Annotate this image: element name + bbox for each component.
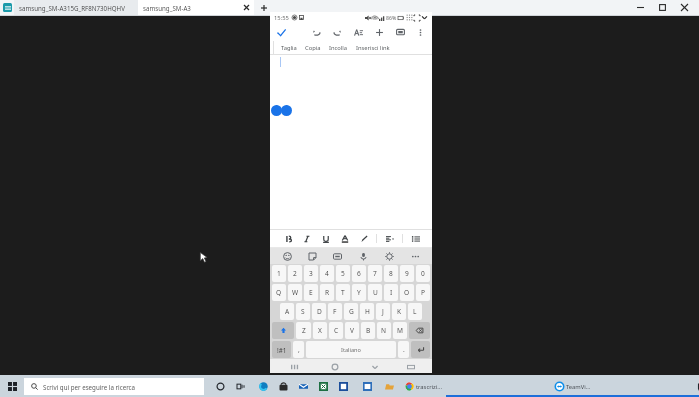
button[interactable]: File Explorer [383,380,396,393]
button[interactable]: E [304,284,318,301]
button[interactable]: B [361,322,375,339]
button[interactable]: Close tab [242,3,251,12]
button[interactable]: Enter [411,341,430,358]
button[interactable]: trascrizi... [405,375,442,397]
button[interactable]: 3 [304,265,318,282]
button[interactable]: Close [673,0,695,15]
button[interactable]: samsung_SM-A315G_RF8N730HQHV [14,0,138,15]
button[interactable]: D [312,303,326,320]
button[interactable]: . [398,341,409,358]
button[interactable]: O [400,284,414,301]
button[interactable]: More options [414,26,427,39]
button[interactable]: Stickers [305,249,319,263]
button[interactable]: Word [337,380,350,393]
button[interactable]: G [344,303,358,320]
button[interactable]: Scrivi qui per eseguire la ricerca [24,378,204,395]
button[interactable]: Comment [394,26,407,39]
button[interactable]: Backspace [409,322,430,339]
staticText: A [285,307,290,316]
button[interactable]: A [280,303,294,320]
button[interactable]: 4 [320,265,334,282]
button[interactable]: C [329,322,343,339]
button[interactable]: New tab [254,0,274,15]
button[interactable]: 6 [352,265,366,282]
button[interactable]: Y [352,284,366,301]
button[interactable]: Format [352,26,365,39]
staticText: D [317,307,322,316]
button[interactable]: Text colour [338,232,351,245]
button[interactable]: TeamVi... [446,375,699,397]
button[interactable]: Done [275,26,288,39]
button[interactable]: Italic [300,232,313,245]
button[interactable]: Redo [331,26,344,39]
button[interactable]: Alignment [383,232,396,245]
staticText: 5 [341,269,345,278]
staticText: W [292,288,299,297]
button[interactable]: Italiano [306,341,396,358]
button[interactable]: Microsoft Edge [257,380,270,393]
button[interactable]: Z [296,322,311,339]
button[interactable]: !#1 [272,341,291,358]
button[interactable]: samsung_SM-A315G_RF8N730HQHV [138,0,254,15]
button[interactable]: V [345,322,359,339]
button[interactable]: 9 [400,265,414,282]
button[interactable]: 1 [272,265,286,282]
button[interactable]: 8 [384,265,398,282]
staticText: . [403,345,405,354]
button[interactable]: Taglia [281,44,297,52]
button[interactable]: Keyboard [404,360,417,373]
button[interactable]: 5 [336,265,350,282]
button[interactable]: I [384,284,398,301]
button[interactable]: Recents [288,360,301,373]
button[interactable]: S [296,303,310,320]
staticText: P [421,288,425,297]
button[interactable]: Maximize [651,0,673,15]
button[interactable]: N [377,322,391,339]
button[interactable]: Start [0,375,24,397]
button[interactable]: Bold [282,232,295,245]
button[interactable]: Incolla [329,44,348,52]
button[interactable]: X [313,322,327,339]
button[interactable]: W [288,284,302,301]
button[interactable]: T [336,284,350,301]
button[interactable]: Shift [272,322,294,339]
button[interactable]: Notepad [361,380,374,393]
staticText: 0 [421,269,425,278]
button[interactable]: K [392,303,406,320]
button[interactable]: Cortana [214,380,227,393]
button[interactable]: Close keyboard [368,360,381,373]
button[interactable]: GIF [330,249,344,263]
button[interactable]: Copia [305,44,321,52]
button[interactable]: Mail [297,380,310,393]
button[interactable]: More [408,249,422,263]
button[interactable]: Home [328,360,341,373]
button[interactable]: Excel [317,380,330,393]
button[interactable]: 7 [368,265,382,282]
button[interactable]: Keyboard settings [382,249,396,263]
button[interactable]: Underline [319,232,332,245]
button[interactable]: Q [272,284,286,301]
other: Grid [406,14,413,21]
button[interactable]: J [376,303,390,320]
button[interactable]: Insert [373,26,386,39]
button[interactable]: Highlight [357,232,370,245]
button[interactable]: R [320,284,334,301]
staticText: Incolla [329,44,348,52]
button[interactable]: Inserisci link [356,44,390,52]
button[interactable]: M [393,322,407,339]
button[interactable]: Task view [235,380,248,393]
button[interactable]: 2 [288,265,302,282]
button[interactable]: P [416,284,430,301]
button[interactable]: List [409,232,422,245]
button[interactable]: Emoji [280,249,294,263]
button[interactable]: H [360,303,374,320]
button[interactable]: Microsoft Store [277,380,290,393]
button[interactable]: Voice input [356,249,370,263]
button[interactable]: U [368,284,382,301]
button[interactable]: Undo [310,26,323,39]
button[interactable]: 0 [416,265,430,282]
button[interactable]: Minimize [629,0,651,15]
button[interactable]: L [408,303,422,320]
button[interactable]: F [328,303,342,320]
button[interactable]: , [293,341,304,358]
